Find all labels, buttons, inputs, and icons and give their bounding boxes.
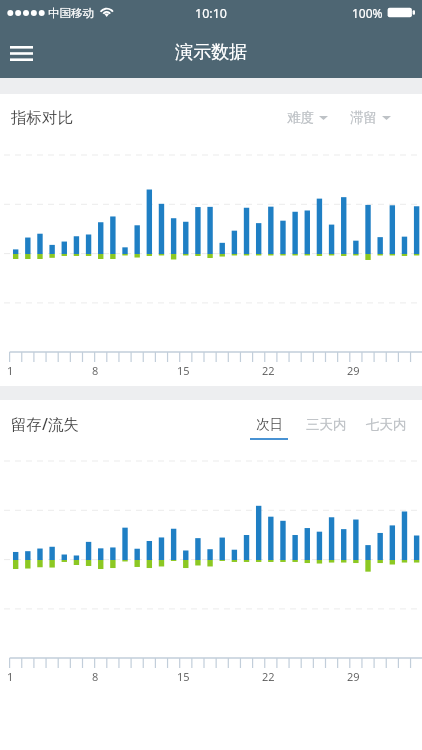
staticText: 难度 (287, 109, 314, 126)
staticText: 指标对比 (11, 108, 73, 128)
staticText: 29 (347, 363, 360, 378)
staticText: 1 (7, 363, 14, 378)
staticText: 1 (7, 669, 14, 684)
staticText: 8 (92, 669, 99, 684)
staticText: 10:10 (195, 5, 227, 22)
button[interactable]: 滞留 (350, 101, 391, 134)
staticText: 滞留 (350, 109, 377, 126)
staticText: 22 (262, 669, 275, 684)
button[interactable]: 难度 (287, 101, 328, 134)
staticText: 15 (177, 363, 190, 378)
staticText: 100% (352, 5, 383, 21)
staticText: 29 (347, 669, 360, 684)
staticText: 22 (262, 363, 275, 378)
staticText: 中国移动 (48, 6, 94, 20)
staticText: 三天内 (306, 416, 347, 433)
staticText: 15 (177, 669, 190, 684)
button[interactable]: Open navigation menu (0, 31, 43, 75)
staticText: 演示数据 (175, 41, 247, 64)
button[interactable]: 七天内 (366, 407, 407, 440)
staticText: 留存/流失 (11, 413, 79, 434)
staticText: 七天内 (366, 416, 407, 433)
button[interactable]: 次日 (250, 407, 288, 440)
button[interactable]: 三天内 (306, 407, 347, 440)
staticText: 次日 (256, 416, 283, 433)
staticText: 8 (92, 363, 99, 378)
